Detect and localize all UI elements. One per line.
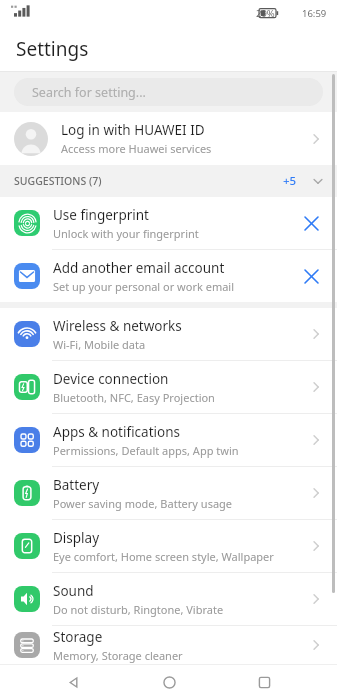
staticText: Search for setting... (32, 84, 146, 101)
staticText: Battery (53, 476, 100, 494)
staticText: +5 (283, 173, 297, 189)
button[interactable]: Recent apps (242, 664, 286, 700)
button[interactable]: Apps & notifications (0, 414, 337, 466)
button[interactable]: Storage (0, 626, 337, 664)
staticText: 16:59 (302, 7, 327, 20)
staticText: Access more Huawei services (61, 141, 212, 156)
staticText: Add another email account (53, 259, 225, 277)
staticText: Memory, Storage cleaner (53, 648, 183, 663)
staticText: Use fingerprint (53, 206, 149, 224)
button[interactable]: Sound (0, 573, 337, 625)
button[interactable]: Search for setting... (14, 78, 323, 106)
staticText: Log in with HUAWEI ID (61, 121, 205, 139)
staticText: SUGGESTIONS (7) (14, 174, 102, 188)
staticText: Apps & notifications (53, 423, 180, 441)
staticText: Unlock with your fingerprint (53, 226, 199, 241)
button[interactable]: Use fingerprint (0, 197, 337, 249)
button[interactable]: Wireless & networks (0, 308, 337, 360)
button[interactable]: Dismiss Add another email account (295, 260, 327, 292)
staticText: Display (53, 529, 100, 547)
button[interactable]: Display (0, 520, 337, 572)
staticText: Wireless & networks (53, 317, 182, 335)
button[interactable]: Dismiss Use fingerprint (295, 207, 327, 239)
staticText: Do not disturb, Ringtone, Vibrate (53, 602, 224, 617)
button[interactable]: Device connection (0, 361, 337, 413)
staticText: 29% (256, 7, 275, 20)
staticText: Eye comfort, Home screen style, Wallpape… (53, 549, 274, 564)
staticText: Set up your personal or work email (53, 279, 235, 294)
button[interactable]: Battery (0, 467, 337, 519)
staticText: Settings (16, 36, 89, 62)
staticText: Device connection (53, 370, 169, 388)
staticText: Bluetooth, NFC, Easy Projection (53, 390, 215, 405)
button[interactable]: Back (51, 664, 95, 700)
staticText: Permissions, Default apps, App twin (53, 443, 239, 458)
button[interactable]: SUGGESTIONS (7) (0, 165, 337, 197)
button[interactable]: Home (147, 664, 191, 700)
staticText: Power saving mode, Battery usage (53, 496, 233, 511)
button[interactable]: Add another email account (0, 250, 337, 302)
staticText: Wi-Fi, Mobile data (53, 337, 146, 352)
staticText: Storage (53, 628, 103, 646)
staticText: Sound (53, 582, 94, 600)
button[interactable]: Log in with HUAWEI ID (0, 112, 337, 165)
